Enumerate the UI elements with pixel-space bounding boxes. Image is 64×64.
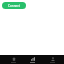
button[interactable]: Profile <box>45 55 59 64</box>
button[interactable]: Home <box>6 55 20 64</box>
button[interactable]: Activity <box>25 55 39 64</box>
staticText: Connect account <box>2 4 26 8</box>
button[interactable]: Connect account <box>2 2 26 9</box>
